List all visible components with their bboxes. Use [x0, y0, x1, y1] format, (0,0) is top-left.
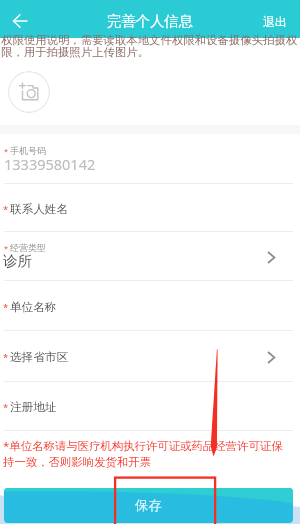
staticText: 13339580142	[4, 154, 96, 174]
staticText: *	[3, 301, 9, 314]
button[interactable]: Upload photo	[8, 71, 50, 113]
staticText: 保存	[135, 497, 162, 514]
staticText: *单位名称请与医疗机构执行许可证或药品经营许可证保持一致，否则影响发货和开票	[3, 438, 285, 470]
staticText: 权限使用说明，需要读取本地文件权限和设备摄像头拍摄权限，用于拍摄照片上传图片。	[1, 33, 300, 59]
staticText: 经营类型	[10, 242, 46, 253]
staticText: *	[4, 146, 9, 156]
staticText: *	[3, 351, 9, 364]
button[interactable]: *	[0, 232, 300, 281]
button[interactable]: Back	[6, 7, 33, 34]
button[interactable]: *	[0, 331, 300, 382]
staticText: 联系人姓名	[10, 202, 68, 217]
staticText: 单位名称	[10, 300, 57, 315]
button[interactable]: 保存	[4, 488, 293, 523]
staticText: *	[3, 203, 9, 216]
staticText: 注册地址	[10, 400, 57, 415]
staticText: 退出	[263, 15, 287, 30]
staticText: *	[3, 401, 9, 414]
staticText: 手机号码	[10, 145, 46, 156]
staticText: 完善个人信息	[107, 12, 193, 30]
staticText: *	[4, 243, 9, 253]
staticText: 选择省市区	[10, 350, 68, 365]
button[interactable]: 退出	[263, 15, 287, 30]
staticText: 诊所	[3, 252, 32, 270]
